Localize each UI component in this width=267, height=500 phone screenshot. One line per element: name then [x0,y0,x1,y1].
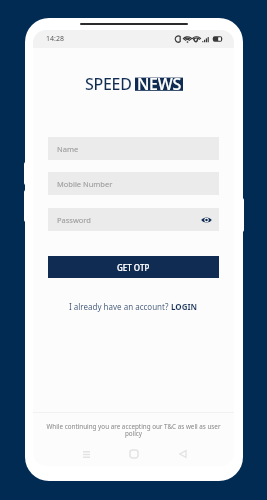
button[interactable]: Name [48,137,219,160]
staticText: GET OTP [117,262,150,273]
staticText: I already have an account? [69,301,171,312]
staticText: Password [57,215,91,225]
other: Show password [201,216,212,224]
staticText: Name [57,144,79,154]
button[interactable]: Home [125,445,143,463]
staticText: 14:28 [46,34,64,44]
button[interactable]: Back [173,445,191,463]
staticText: SPEED [85,73,132,93]
staticText: Mobile Number [57,179,113,189]
staticText: LOGIN [171,301,198,312]
button[interactable]: GET OTP [48,256,219,278]
staticText: NEWS [137,73,181,93]
button[interactable]: Mobile Number [48,172,219,195]
button[interactable]: Recents [77,445,95,463]
button[interactable]: I already have an account? [48,301,219,312]
button[interactable]: Password [48,208,219,231]
staticText: While continuing you are accepting our T… [46,422,221,438]
